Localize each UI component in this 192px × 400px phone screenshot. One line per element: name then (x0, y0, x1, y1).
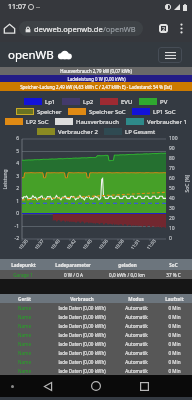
staticText: Laufzeit (165, 296, 184, 302)
button[interactable]: Back (24, 375, 72, 397)
button[interactable]: Home (72, 375, 120, 397)
staticText: 60 (169, 175, 175, 182)
staticText: Name (18, 323, 31, 329)
staticText: Name (18, 305, 31, 311)
button[interactable]: Name (0, 330, 192, 339)
staticText: 2 (16, 185, 19, 192)
staticText: Automatik (125, 323, 148, 329)
staticText: 3 (16, 173, 19, 180)
staticText: 10:40 (49, 237, 61, 251)
staticText: -1 (14, 223, 19, 230)
staticText: Verbraucher 1 (147, 118, 187, 125)
staticText: Ladepunkt (11, 262, 36, 268)
staticText: EVU (121, 98, 133, 105)
staticText: SoC (169, 262, 178, 268)
staticText: Name (18, 314, 31, 320)
staticText: Automatik (125, 305, 148, 311)
staticText: 0 (16, 210, 19, 217)
staticText: 70 (169, 165, 175, 172)
button[interactable]: Name (0, 339, 192, 348)
button[interactable]: More options (172, 14, 190, 42)
staticText: Hausverbrauch 2,79 kW (0,07 kWh) (60, 68, 132, 74)
button[interactable]: Verbraucher 2 (37, 128, 98, 135)
staticText: 0 Min (168, 332, 181, 338)
staticText: 10:42 (65, 237, 77, 251)
staticText: 90 (169, 145, 175, 152)
button[interactable]: Lp2 (62, 98, 94, 105)
staticText: 20 (169, 215, 175, 222)
button[interactable]: PV (139, 98, 168, 105)
staticText: 0 Min (168, 350, 181, 356)
staticText: 0,0 kWh / 0,0 km (109, 272, 145, 278)
button[interactable]: Name (0, 312, 192, 321)
button[interactable]: Garage 1 (0, 270, 192, 279)
button[interactable]: Verbraucher 1 (126, 118, 187, 125)
staticText: Speicher-Ladung 2,49 kW (4,63 kWh C / 2,… (20, 84, 172, 90)
staticText: Automatik (125, 350, 148, 356)
button[interactable]: devweb.openwb.de (19, 21, 143, 36)
button[interactable]: Name (0, 321, 192, 330)
button[interactable]: LP2 SoC (5, 118, 49, 125)
staticText: lade Daten (0,00 kWh) (58, 314, 106, 320)
staticText: Hausverbrauch (76, 118, 120, 125)
staticText: Automatik (125, 368, 148, 374)
staticText: 5 (16, 148, 19, 155)
button[interactable]: Speicher SoC (68, 108, 126, 115)
button[interactable]: LP Gesamt (104, 128, 156, 135)
staticText: Automatik (125, 314, 148, 320)
button[interactable]: Name (0, 366, 192, 375)
staticText: 11:07 (8, 2, 26, 12)
staticText: Speicher (37, 108, 62, 115)
staticText: 2 (162, 25, 166, 32)
staticText: PV (160, 98, 168, 105)
staticText: /openWB (103, 24, 136, 34)
button[interactable]: Recent apps (120, 375, 168, 397)
staticText: lade Daten (0,00 kWh) (58, 359, 106, 365)
staticText: 0 (169, 235, 172, 242)
staticText: 0 Min (168, 341, 181, 347)
staticText: 10 (169, 225, 175, 232)
button[interactable]: Hausverbrauch (55, 118, 120, 125)
staticText: Name (18, 359, 31, 365)
staticText: lade Daten (0,00 kWh) (58, 350, 106, 356)
button[interactable]: Lp1 (24, 98, 56, 105)
button[interactable]: Name (0, 357, 192, 366)
staticText: 0 Min (168, 359, 181, 365)
button[interactable]: Switch tabs (154, 19, 172, 37)
staticText: 30 (169, 205, 175, 212)
staticText: 0 Min (168, 368, 181, 374)
button[interactable]: LP1 SoC (132, 108, 176, 115)
staticText: geladen (118, 262, 137, 268)
button[interactable]: Menu (158, 47, 182, 63)
staticText: Leistung [kW] (1, 157, 8, 189)
button[interactable]: Name (0, 303, 192, 312)
staticText: Ladeparameter (55, 262, 91, 268)
staticText: 0 Min (168, 314, 181, 320)
staticText: 6 (16, 135, 19, 142)
button[interactable]: Name (0, 348, 192, 357)
button[interactable]: EVU (100, 98, 133, 105)
staticText: LP2 SoC (26, 118, 49, 125)
staticText: LP1 SoC (153, 108, 176, 115)
staticText: SoC [%] (183, 174, 190, 192)
button[interactable]: Home (0, 14, 19, 42)
staticText: devweb.openwb.de (34, 24, 103, 34)
staticText: 50 (169, 185, 175, 192)
staticText: 10:35 (17, 237, 29, 251)
staticText: 0 Min (168, 323, 181, 329)
staticText: Automatik (125, 341, 148, 347)
staticText: Ladeleistung 0 W (0,00 kWh) (67, 76, 126, 82)
staticText: Lp1 (45, 98, 56, 105)
staticText: Automatik (125, 359, 148, 365)
staticText: Lp2 (83, 98, 94, 105)
button[interactable]: Speicher (16, 108, 62, 115)
staticText: 0 W / 0 A (64, 272, 83, 278)
staticText: 11:01 (129, 237, 141, 251)
staticText: 4 (16, 160, 19, 167)
staticText: Gerät (18, 296, 31, 302)
staticText: lade Daten (0,00 kWh) (58, 332, 106, 338)
staticText: Name (18, 368, 31, 374)
button[interactable]: openWB (8, 47, 72, 63)
staticText: 37 % C (166, 272, 181, 278)
staticText: 80 (169, 155, 175, 162)
